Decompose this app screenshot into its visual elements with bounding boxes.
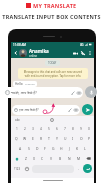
staticText: Z	[25, 156, 27, 161]
staticText: .	[78, 166, 80, 171]
staticText: 3	[32, 127, 34, 131]
other: Camera	[74, 108, 78, 112]
button[interactable]: M	[74, 154, 83, 163]
button[interactable]: Y	[53, 134, 61, 143]
button[interactable]: ?123	[12, 164, 23, 173]
button[interactable]: Call	[80, 50, 86, 56]
button[interactable]: Shift	[11, 154, 22, 163]
button[interactable]: 2	[21, 124, 29, 133]
button[interactable]: 7	[61, 124, 69, 133]
button[interactable]: E	[29, 134, 37, 143]
button[interactable]: T	[45, 134, 53, 143]
staticText: 9	[80, 127, 82, 131]
staticText: TODAY	[48, 61, 57, 65]
button[interactable]: X	[30, 154, 38, 163]
staticText: 4	[40, 127, 42, 131]
staticText: X	[33, 156, 35, 161]
staticText: 0	[88, 127, 90, 131]
staticText: H	[60, 146, 63, 151]
button[interactable]: हाय आप कैसे हैं?	[12, 105, 80, 115]
button[interactable]: Enter	[83, 164, 92, 173]
staticText: S	[28, 146, 30, 151]
button[interactable]: Send	[82, 104, 93, 115]
button[interactable]: 4	[37, 124, 45, 133]
button[interactable]: U	[61, 134, 69, 143]
button[interactable]: D	[33, 144, 41, 153]
other: Camera	[77, 91, 81, 95]
staticText: 11:08 AM	[25, 83, 35, 86]
staticText: E	[32, 136, 34, 141]
staticText: K	[76, 146, 79, 151]
button[interactable]: 3	[29, 124, 37, 133]
staticText: G	[52, 146, 55, 151]
button[interactable]: 6	[53, 124, 61, 133]
staticText: L	[84, 146, 86, 151]
button[interactable]: G	[49, 144, 57, 153]
button[interactable]: S	[25, 144, 33, 153]
button[interactable]: P	[85, 134, 93, 143]
button[interactable]: L	[81, 144, 89, 153]
button[interactable]: B	[56, 154, 65, 163]
staticText: नमस्ते, आप कैसे हैं?	[11, 90, 37, 95]
button[interactable]: A	[16, 144, 25, 153]
button[interactable]: 1	[12, 124, 21, 133]
staticText: U	[64, 136, 67, 141]
button[interactable]: More options	[87, 50, 92, 55]
button[interactable]: F	[41, 144, 49, 153]
button[interactable]: H	[57, 144, 65, 153]
staticText: B	[59, 156, 62, 161]
staticText: Y	[56, 136, 58, 141]
staticText: TRANSLATE INPUT BOX CONTENTS	[2, 13, 101, 20]
button[interactable]: W	[21, 134, 29, 143]
other: Attach	[71, 91, 75, 95]
button[interactable]: Video call	[72, 50, 78, 56]
button[interactable]: Q	[12, 134, 21, 143]
other: Attach	[68, 108, 72, 112]
staticText: A	[19, 146, 22, 151]
button[interactable]: I	[69, 134, 77, 143]
staticText: T	[48, 136, 50, 141]
staticText: P	[88, 136, 91, 141]
staticText: Anamika	[29, 48, 49, 54]
button[interactable]: R	[37, 134, 45, 143]
button[interactable]: C	[38, 154, 47, 163]
button[interactable]: O	[77, 134, 85, 143]
staticText: 5	[48, 127, 50, 131]
staticText: I	[72, 136, 74, 141]
staticText: W	[23, 136, 27, 141]
staticText: 8	[72, 127, 74, 131]
button[interactable]: 0	[85, 124, 93, 133]
button[interactable]: Emoji	[23, 164, 31, 173]
staticText: F	[44, 146, 46, 151]
button[interactable]: J	[65, 144, 73, 153]
button[interactable]: 5	[45, 124, 53, 133]
button[interactable]: Voice message	[85, 86, 97, 98]
button[interactable]: नमस्ते, आप कैसे हैं?	[3, 87, 83, 98]
staticText: C	[41, 156, 44, 161]
staticText: Messages to this chat and calls are now …	[21, 70, 85, 77]
button[interactable]: Backspace	[83, 154, 94, 163]
button[interactable]: N	[65, 154, 74, 163]
button[interactable]: 9	[77, 124, 85, 133]
staticText: D	[36, 146, 39, 151]
staticText: Q	[15, 136, 18, 141]
staticText: online	[29, 54, 38, 58]
button[interactable]	[19, 49, 27, 57]
staticText: 2	[24, 127, 26, 131]
button[interactable]: 8	[69, 124, 77, 133]
staticText: ?123	[14, 167, 21, 171]
staticText: J	[69, 146, 70, 151]
button[interactable]: K	[73, 144, 81, 153]
staticText: V	[50, 156, 53, 161]
staticText: R	[40, 136, 43, 141]
button[interactable]: Z	[22, 154, 30, 163]
staticText: abc	[15, 118, 20, 122]
button[interactable]: Back	[13, 50, 19, 56]
staticText: M	[77, 156, 81, 161]
button[interactable]: V	[47, 154, 56, 163]
staticText: 11:08 AM	[13, 43, 27, 47]
staticText: N	[68, 156, 71, 161]
staticText: 7	[64, 127, 66, 131]
